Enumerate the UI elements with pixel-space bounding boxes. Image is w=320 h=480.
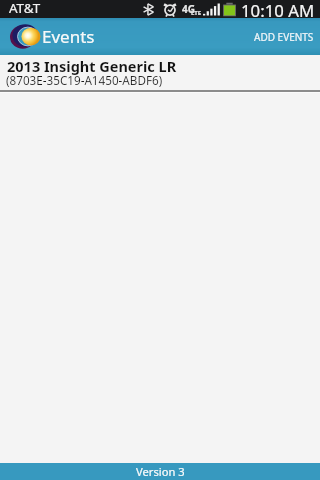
staticText: (8703E-35C19-A1450-ABDF6) xyxy=(6,72,163,88)
button[interactable]: Version 3 xyxy=(0,463,320,480)
staticText: 4G xyxy=(182,2,195,16)
button[interactable]: ADD EVENTS xyxy=(242,21,320,53)
staticText: 10:10 AM xyxy=(241,0,315,17)
staticText: AT&T xyxy=(9,0,41,17)
staticText: 2013 Insight Generic LR xyxy=(7,56,177,76)
staticText: LTE xyxy=(191,9,202,17)
staticText: Events xyxy=(42,25,95,48)
staticText: Version 3 xyxy=(136,464,185,479)
staticText: ADD EVENTS xyxy=(254,30,314,44)
